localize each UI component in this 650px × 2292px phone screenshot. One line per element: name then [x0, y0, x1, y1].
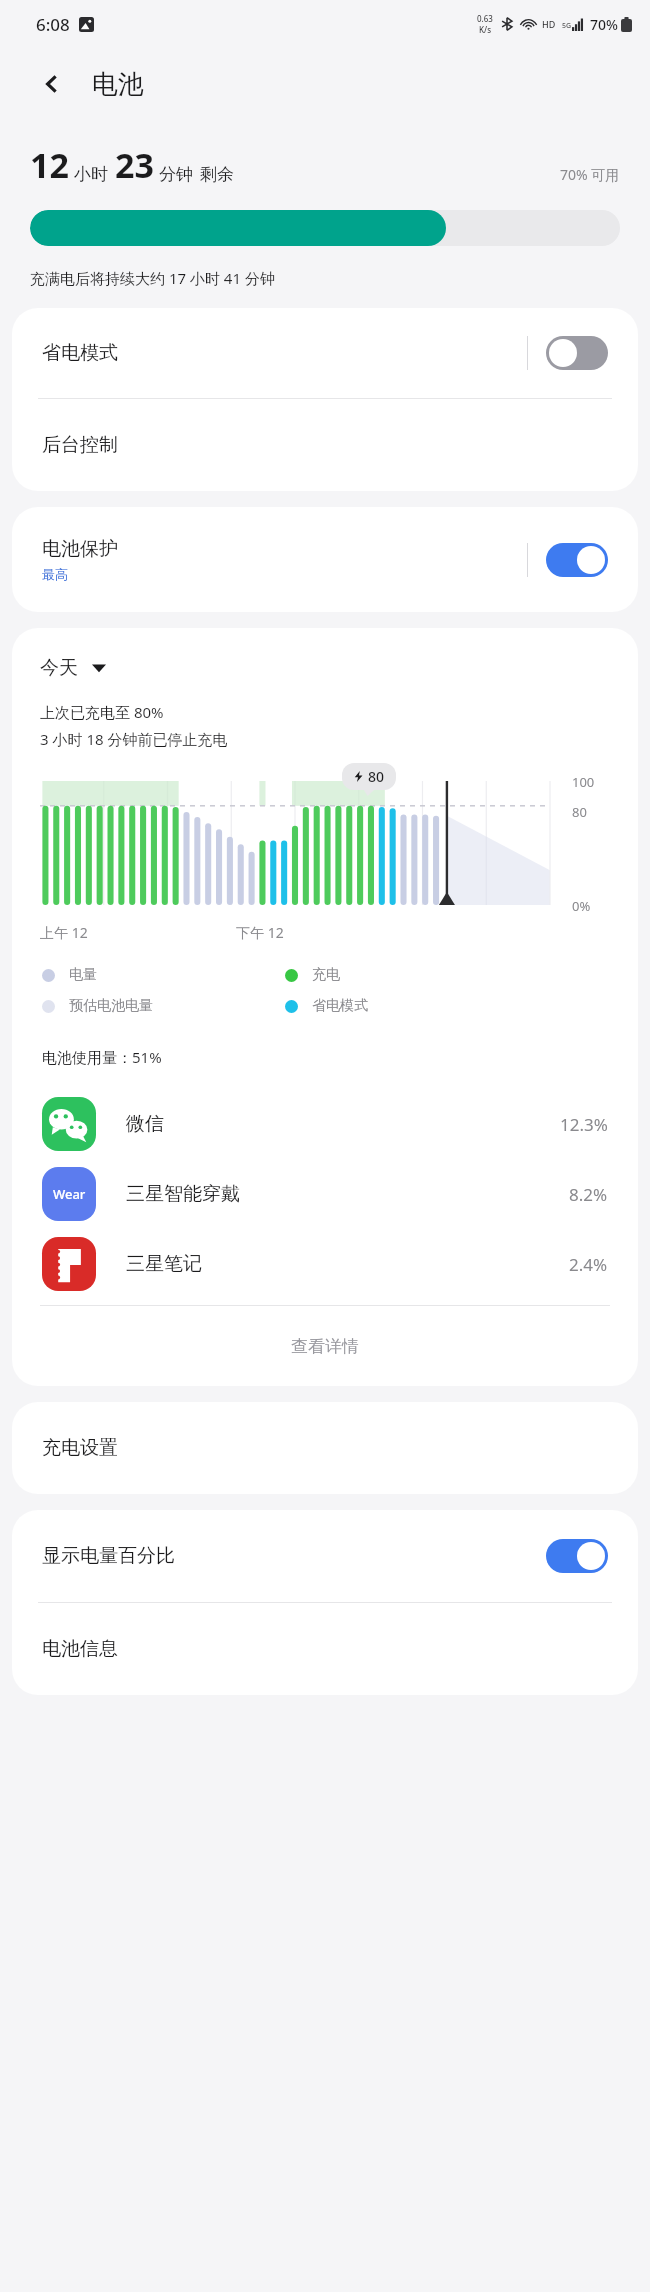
staticText: 三星笔记	[126, 1252, 202, 1276]
button[interactable]: 今天	[40, 656, 106, 680]
staticText: 查看详情	[291, 1336, 359, 1357]
staticText: 80	[572, 803, 587, 821]
staticText: 70% 可用	[560, 165, 620, 184]
staticText: 8.2%	[569, 1183, 608, 1206]
button[interactable]: 电池保护	[12, 507, 638, 612]
staticText: 充满电后将持续大约 17 小时 41 分钟	[30, 268, 275, 288]
staticText: 80	[368, 767, 385, 786]
staticText: 100	[572, 773, 595, 791]
staticText: 0%	[572, 897, 591, 915]
button[interactable]: 微信	[12, 1089, 638, 1159]
button[interactable]: 电池信息	[12, 1603, 638, 1695]
staticText: 12.3%	[560, 1113, 608, 1136]
button[interactable]: Back	[30, 62, 74, 106]
staticText: 0.63	[477, 13, 493, 24]
staticText: 微信	[126, 1112, 164, 1136]
button[interactable]: 充电设置	[12, 1402, 638, 1494]
button[interactable]: Toggle off	[546, 336, 608, 370]
staticText: 今天	[40, 656, 78, 680]
button[interactable]: 查看详情	[12, 1306, 638, 1386]
staticText: 2.4%	[569, 1253, 608, 1276]
staticText: 小时	[74, 164, 108, 185]
staticText: 电池使用量：51%	[42, 1047, 162, 1067]
button[interactable]: 三星笔记	[12, 1229, 638, 1299]
staticText: 上午 12	[40, 923, 88, 942]
staticText: 6:08	[36, 13, 70, 36]
staticText: 充电设置	[42, 1436, 118, 1460]
staticText: 三星智能穿戴	[126, 1182, 240, 1206]
button[interactable]: Wear	[12, 1159, 638, 1229]
staticText: 3 小时 18 分钟前已停止充电	[40, 729, 228, 749]
staticText: 12	[30, 142, 69, 188]
staticText: 后台控制	[42, 433, 118, 457]
staticText: 分钟	[159, 164, 193, 185]
staticText: 23	[115, 142, 154, 188]
staticText: 省电模式	[42, 341, 118, 365]
staticText: 电池信息	[42, 1637, 118, 1661]
staticText: 充电	[312, 966, 340, 984]
button[interactable]: Toggle on	[546, 543, 608, 577]
staticText: 5G	[562, 21, 572, 31]
button[interactable]: 省电模式	[12, 308, 638, 398]
staticText: K/s	[479, 24, 492, 35]
staticText: 显示电量百分比	[42, 1544, 175, 1568]
staticText: 电量	[69, 966, 97, 984]
staticText: 电池保护	[42, 537, 118, 561]
button[interactable]: Toggle on	[546, 1539, 608, 1573]
staticText: 剩余	[200, 164, 234, 185]
staticText: 最高	[42, 566, 68, 582]
staticText: 电池	[92, 68, 144, 101]
button[interactable]: 后台控制	[12, 399, 638, 491]
staticText: 预估电池电量	[69, 997, 153, 1015]
staticText: 上次已充电至 80%	[40, 702, 164, 722]
staticText: Wear	[53, 1185, 86, 1203]
staticText: 下午 12	[236, 923, 284, 942]
staticText: HD	[542, 18, 556, 30]
staticText: 70%	[590, 15, 618, 34]
staticText: 省电模式	[312, 997, 368, 1015]
button[interactable]: 显示电量百分比	[12, 1510, 638, 1602]
